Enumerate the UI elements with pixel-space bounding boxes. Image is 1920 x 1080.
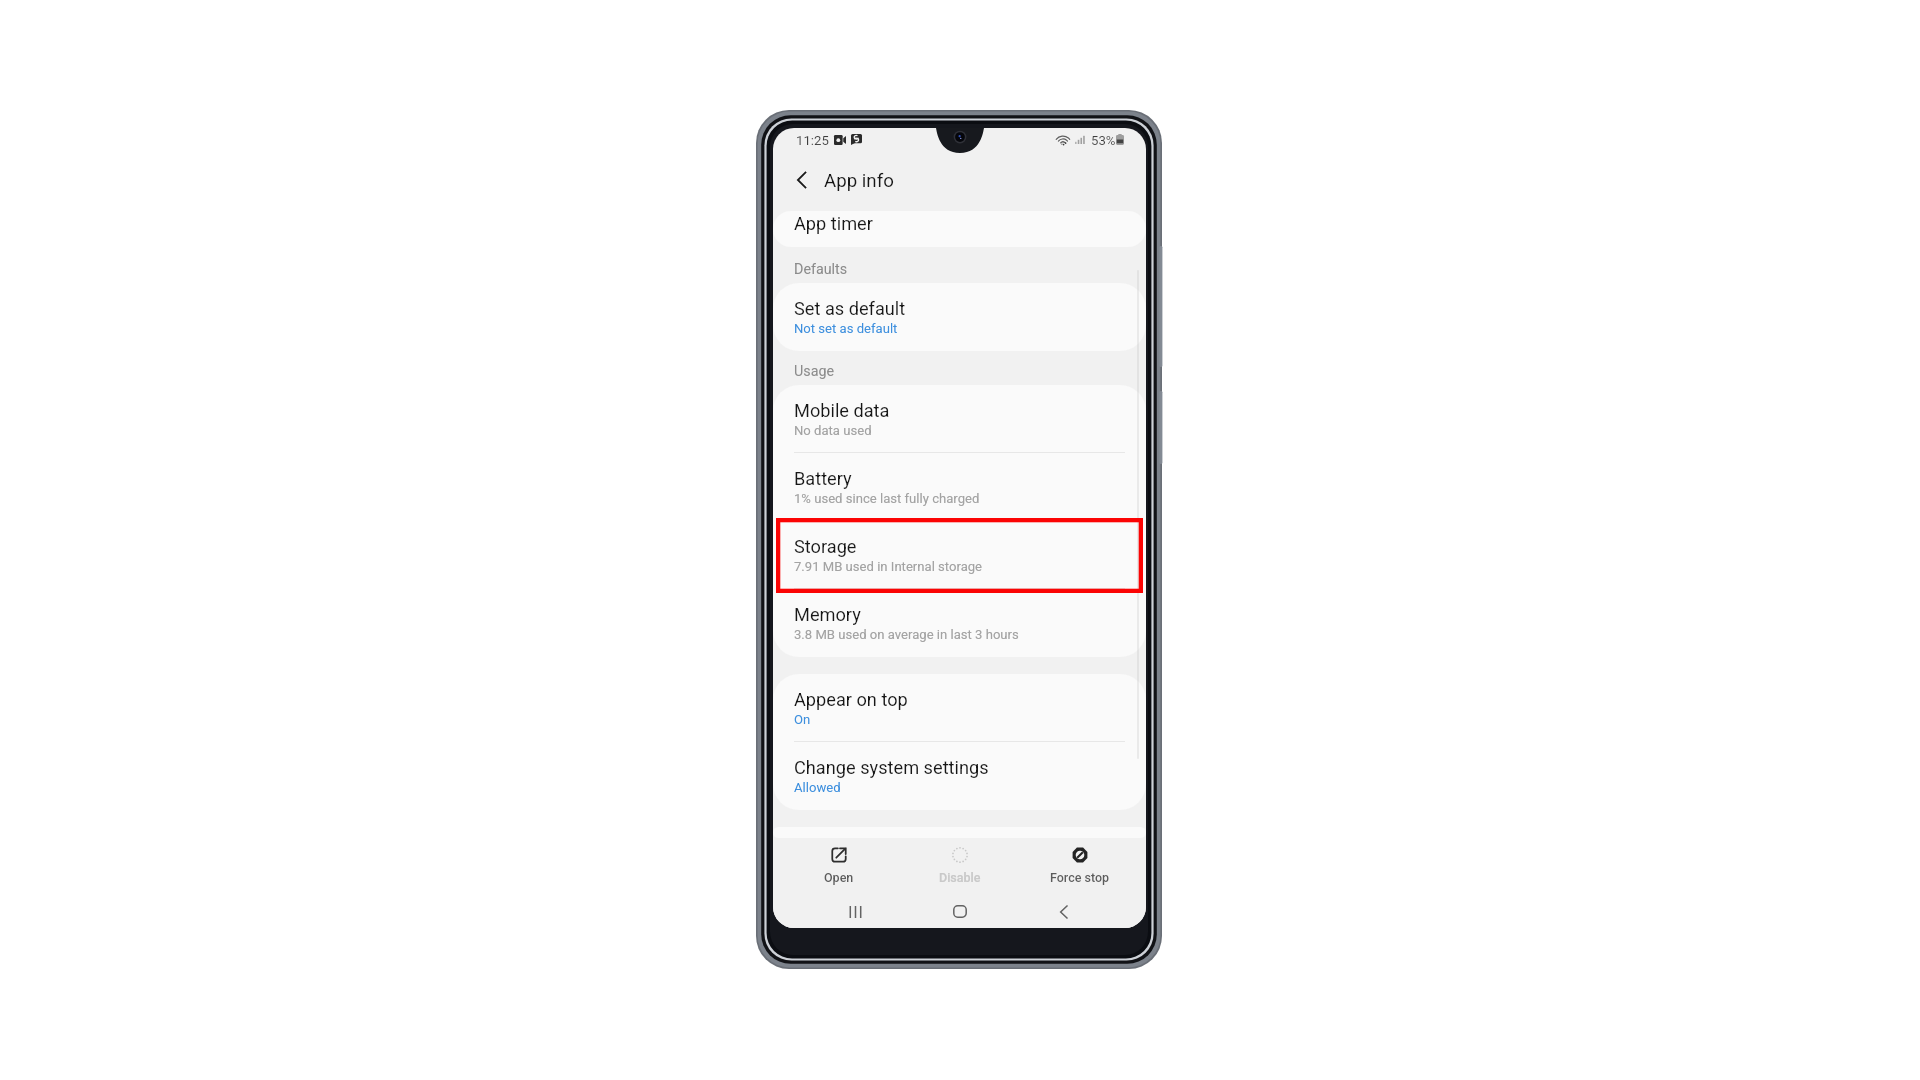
staticText: 1% used since last fully charged bbox=[794, 491, 980, 506]
staticText: Not set as default bbox=[794, 321, 898, 336]
staticText: On bbox=[794, 712, 811, 727]
staticText: Mobile data bbox=[794, 400, 890, 421]
staticText: App info bbox=[824, 170, 894, 192]
staticText: 11:25 bbox=[796, 133, 829, 148]
staticText: Usage bbox=[794, 363, 835, 380]
staticText: Defaults bbox=[794, 261, 848, 278]
staticText: Open bbox=[824, 870, 854, 885]
button[interactable]: Recent apps bbox=[833, 895, 877, 928]
staticText: Storage bbox=[794, 536, 857, 557]
button[interactable]: Set as default bbox=[773, 283, 1146, 351]
button[interactable]: Memory bbox=[773, 589, 1146, 657]
button[interactable]: Change system settings bbox=[773, 742, 1146, 810]
staticText: No data used bbox=[794, 423, 872, 438]
staticText: Memory bbox=[794, 604, 861, 625]
button[interactable]: Navigate up bbox=[773, 145, 1146, 211]
staticText: Set as default bbox=[794, 298, 906, 319]
staticText: Appear on top bbox=[794, 689, 908, 710]
button[interactable]: Back bbox=[1042, 895, 1086, 928]
button[interactable]: Open bbox=[784, 837, 894, 894]
staticText: Change system settings bbox=[794, 757, 989, 778]
staticText: Force stop bbox=[1050, 870, 1110, 885]
button[interactable]: Battery bbox=[773, 453, 1146, 521]
button[interactable]: App timer bbox=[773, 211, 1146, 247]
button[interactable]: Force stop bbox=[1025, 837, 1135, 894]
button[interactable]: Navigate up bbox=[787, 165, 816, 194]
staticText: 53% bbox=[1091, 133, 1116, 148]
button[interactable]: Storage bbox=[773, 521, 1146, 589]
staticText: Allowed bbox=[794, 780, 841, 795]
staticText: 3.8 MB used on average in last 3 hours bbox=[794, 627, 1019, 642]
button[interactable]: Disable bbox=[905, 837, 1015, 894]
button[interactable]: Mobile data bbox=[773, 385, 1146, 453]
button[interactable]: Appear on top bbox=[773, 674, 1146, 742]
staticText: App timer bbox=[794, 213, 873, 234]
button[interactable]: Home bbox=[938, 895, 982, 928]
staticText: Disable bbox=[939, 870, 981, 885]
staticText: 7.91 MB used in Internal storage bbox=[794, 559, 983, 574]
staticText: Battery bbox=[794, 468, 852, 489]
